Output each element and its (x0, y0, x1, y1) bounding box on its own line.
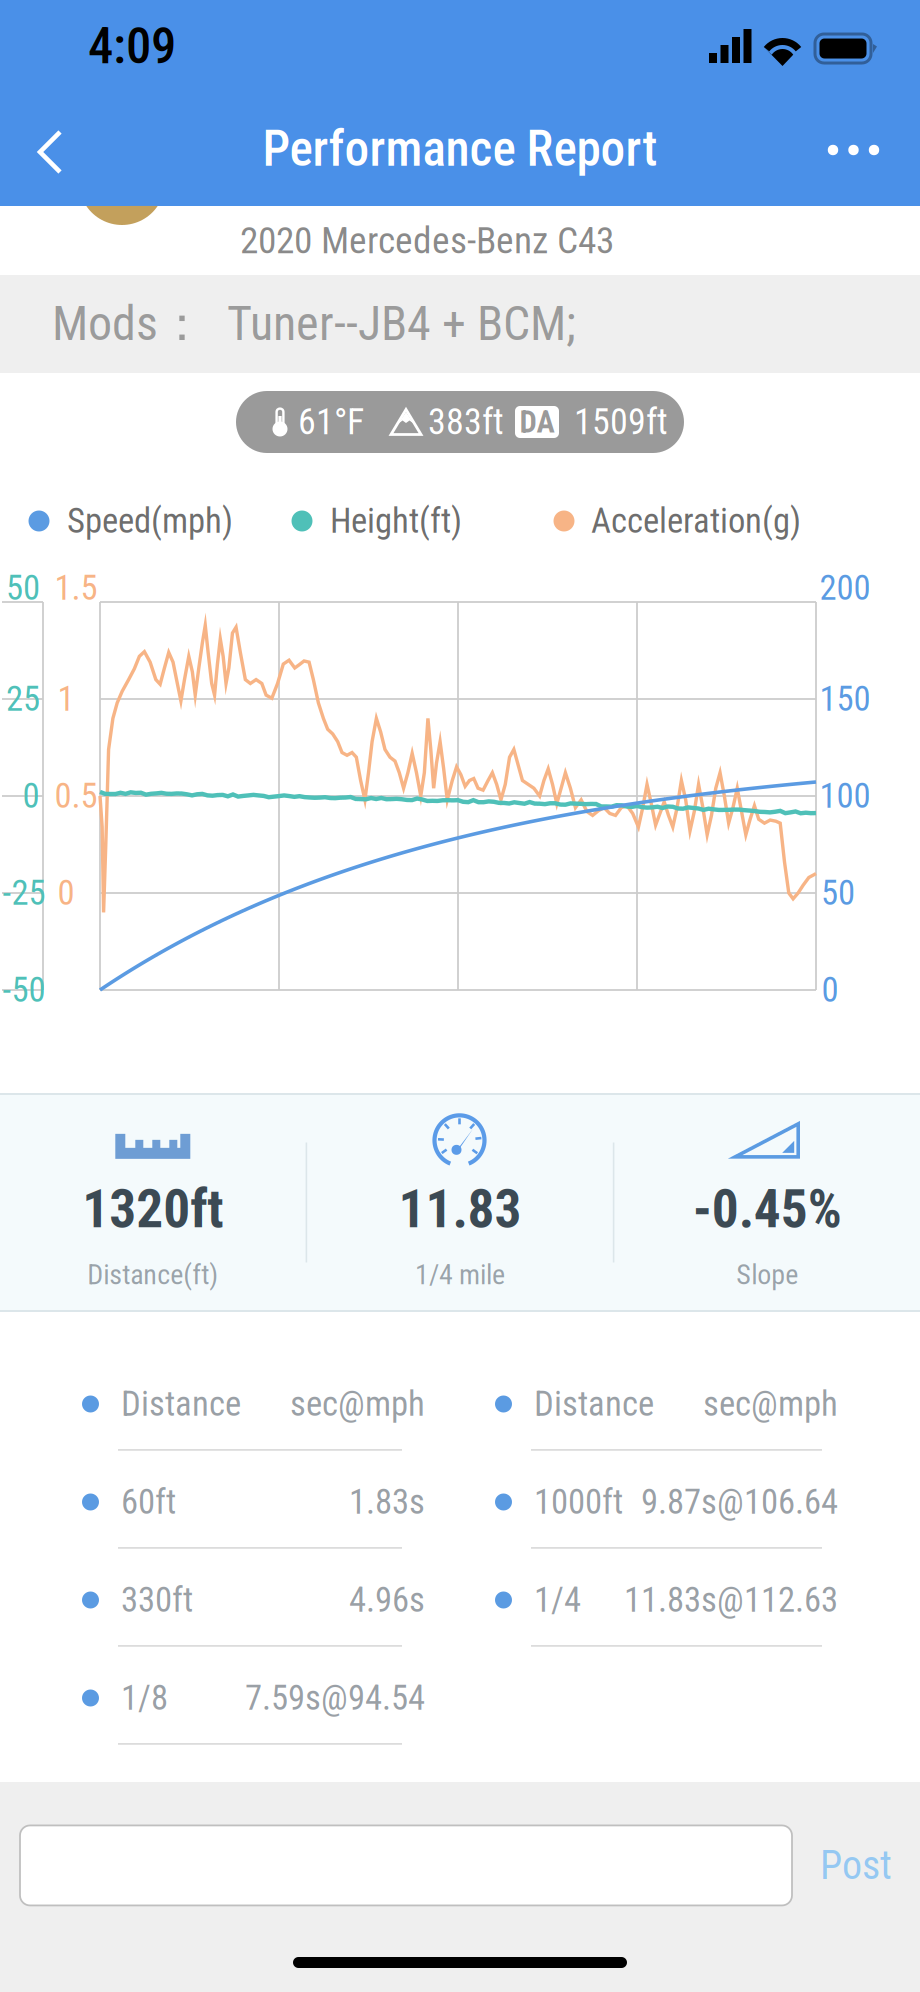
staticText: Height(ft) (330, 501, 462, 541)
staticText: 1/4 mile (415, 1258, 505, 1291)
staticText: Distance(ft) (87, 1258, 218, 1291)
staticText: 4.96s (349, 1580, 425, 1620)
staticText: 100 (819, 776, 870, 816)
staticText: 61°F (298, 401, 364, 443)
staticText: 1509ft (574, 401, 668, 443)
staticText: 150 (819, 679, 870, 719)
staticText: 1 (57, 679, 74, 719)
staticText: 60ft (121, 1482, 176, 1522)
staticText: -0.45% (693, 1178, 842, 1240)
staticText: 50 (6, 568, 40, 608)
staticText: Slope (736, 1258, 798, 1291)
staticText: 50 (821, 873, 855, 913)
staticText: 7.59s@94.54 (245, 1678, 425, 1718)
staticText: sec@mph (290, 1384, 425, 1424)
staticText: 0 (821, 970, 838, 1010)
staticText: 1.5 (54, 568, 97, 608)
staticText: 1.83s (349, 1482, 425, 1522)
staticText: Acceleration(g) (591, 501, 801, 541)
staticText: 1000ft (534, 1482, 623, 1522)
staticText: Distance (121, 1384, 241, 1424)
staticText: 200 (819, 568, 870, 608)
staticText: sec@mph (703, 1384, 838, 1424)
staticText: 1/8 (121, 1678, 168, 1718)
staticText: 0.5 (54, 776, 97, 816)
staticText: 4:09 (88, 16, 176, 76)
staticText: Performance Report (262, 120, 657, 178)
staticText: DA (519, 404, 554, 440)
staticText: 0 (22, 776, 39, 816)
staticText: 1320ft (82, 1178, 223, 1240)
button[interactable]: Post (792, 1822, 920, 1909)
staticText: -50 (2, 970, 45, 1010)
staticText: Mods： Tuner--JB4 + BCM; (52, 294, 576, 354)
staticText: -25 (2, 873, 45, 913)
staticText: 11.83 (398, 1178, 521, 1240)
button[interactable]: Back (0, 92, 118, 172)
staticText: 11.83s@112.63 (624, 1580, 838, 1620)
staticText: 2020 Mercedes-Benz C43 (240, 219, 614, 262)
staticText: 383ft (428, 401, 504, 443)
button[interactable]: More options (0, 92, 900, 168)
staticText: Distance (534, 1384, 654, 1424)
staticText: 330ft (121, 1580, 193, 1620)
staticText: Speed(mph) (67, 501, 233, 541)
staticText: 0 (57, 873, 74, 913)
staticText: 9.87s@106.64 (641, 1482, 838, 1522)
staticText: 25 (6, 679, 40, 719)
staticText: Post (820, 1842, 892, 1889)
staticText: 1/4 (534, 1580, 581, 1620)
